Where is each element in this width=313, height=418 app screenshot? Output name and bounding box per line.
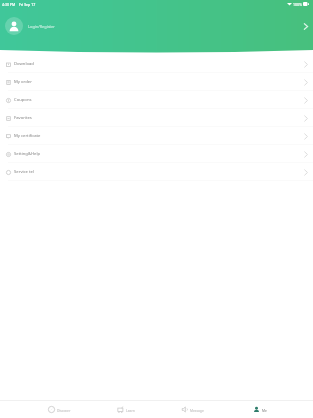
button[interactable]: Setting&Help bbox=[0, 145, 313, 163]
button[interactable]: Download bbox=[0, 55, 313, 73]
staticText: Message bbox=[190, 408, 204, 412]
button[interactable]: Service tel bbox=[0, 163, 313, 181]
staticText: Favorites bbox=[14, 115, 32, 121]
staticText: Fri Sep 17 bbox=[19, 2, 36, 7]
button[interactable]: My certificate bbox=[0, 127, 313, 145]
button[interactable]: Login/Register bbox=[0, 13, 313, 39]
button[interactable]: Coupons bbox=[0, 91, 313, 109]
staticText: Discover bbox=[57, 408, 71, 412]
staticText: Setting&Help bbox=[14, 151, 41, 157]
button[interactable]: Message bbox=[159, 401, 226, 418]
other: Open bbox=[302, 79, 309, 86]
staticText: Service tel bbox=[14, 169, 35, 175]
other: Open bbox=[302, 133, 309, 140]
staticText: 4:30 PM bbox=[2, 2, 16, 7]
button[interactable]: Learn bbox=[92, 401, 159, 418]
staticText: Login/Register bbox=[28, 24, 55, 29]
staticText: Me bbox=[262, 408, 267, 412]
staticText: My order bbox=[14, 79, 32, 85]
staticText: Coupons bbox=[14, 97, 32, 103]
button[interactable]: Me bbox=[226, 401, 293, 418]
other: Open bbox=[302, 169, 309, 176]
staticText: Download bbox=[14, 61, 34, 67]
other: Open bbox=[302, 61, 309, 68]
other: Open bbox=[302, 97, 309, 104]
other: Open bbox=[302, 151, 309, 158]
button[interactable]: Favorites bbox=[0, 109, 313, 127]
other: Open profile bbox=[302, 23, 309, 30]
staticText: Learn bbox=[126, 408, 135, 412]
button[interactable]: Discover bbox=[26, 401, 92, 418]
button[interactable]: My order bbox=[0, 73, 313, 91]
staticText: My certificate bbox=[14, 133, 41, 139]
other: Open bbox=[302, 115, 309, 122]
staticText: 100% bbox=[293, 2, 302, 7]
